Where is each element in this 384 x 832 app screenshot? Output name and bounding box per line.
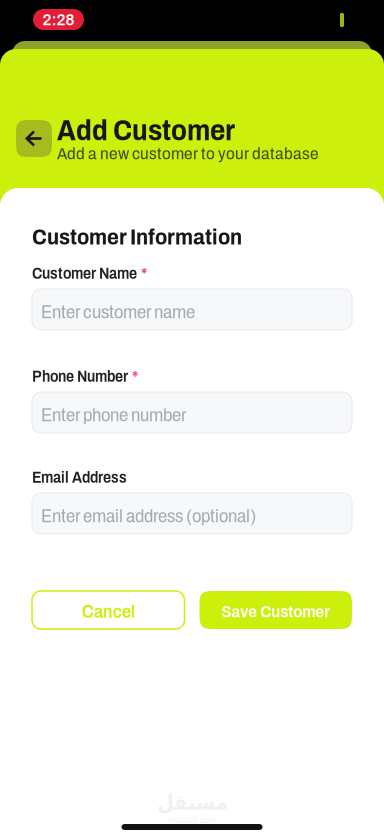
button[interactable]: Cancel <box>32 591 184 629</box>
staticText: * <box>141 265 147 282</box>
staticText: Cancel <box>82 601 135 622</box>
button[interactable]: Enter email address (optional) <box>32 493 352 534</box>
button[interactable]: Enter phone number <box>32 392 352 433</box>
button[interactable]: Enter customer name <box>32 289 352 330</box>
staticText: 2:28 <box>42 10 74 29</box>
staticText: Phone Number <box>32 368 128 385</box>
button[interactable]: Back <box>16 120 52 157</box>
staticText: Add a new customer to your database <box>57 144 319 163</box>
staticText: mostaql.com <box>168 815 216 825</box>
staticText: Customer Information <box>32 225 242 249</box>
staticText: Save Customer <box>221 602 330 621</box>
staticText: Email Address <box>32 469 127 486</box>
staticText: Customer Name <box>32 265 137 282</box>
staticText: Add Customer <box>57 114 235 146</box>
staticText: Enter customer name <box>41 302 195 322</box>
staticText: Enter email address (optional) <box>41 506 256 526</box>
staticText: مستقل <box>156 790 227 815</box>
staticText: Enter phone number <box>41 405 187 425</box>
button[interactable]: Save Customer <box>199 591 352 629</box>
staticText: * <box>132 368 138 385</box>
